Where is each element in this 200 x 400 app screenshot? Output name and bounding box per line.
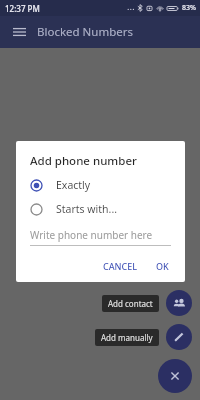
button[interactable]: Add contact [166, 290, 192, 316]
staticText: Exactly [56, 178, 91, 192]
button[interactable]: Exactly [30, 178, 175, 192]
staticText: 12:37 PM [5, 3, 40, 14]
button[interactable]: Open navigation drawer [8, 21, 30, 43]
staticText: Starts with... [56, 202, 118, 216]
staticText: OK [156, 260, 169, 272]
button[interactable]: Write phone number here [30, 228, 171, 246]
button[interactable]: Add manually [166, 324, 192, 350]
staticText: Add manually [101, 332, 153, 343]
button[interactable]: Add manually [95, 329, 159, 346]
staticText: 83% [182, 3, 196, 13]
button[interactable]: Close menu [158, 359, 192, 393]
button[interactable]: CANCEL [97, 256, 144, 276]
staticText: Add contact [108, 298, 153, 309]
staticText: Blocked Numbers [37, 24, 134, 40]
button[interactable]: Starts with... [30, 202, 175, 216]
staticText: Write phone number here [30, 228, 153, 242]
staticText: Add phone number [30, 153, 137, 169]
button[interactable]: Add contact [102, 295, 159, 312]
button[interactable]: OK [150, 256, 175, 276]
staticText: CANCEL [103, 260, 138, 272]
